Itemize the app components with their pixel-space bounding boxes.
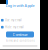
staticText: Terms and conditions — [5, 39, 34, 42]
button[interactable]: Continue — [6, 31, 34, 37]
staticText: Continue — [12, 32, 27, 37]
staticText: Use my email — [5, 18, 22, 22]
staticText: Log in with Apple — [5, 3, 34, 8]
staticText: Hide my email — [5, 25, 24, 29]
